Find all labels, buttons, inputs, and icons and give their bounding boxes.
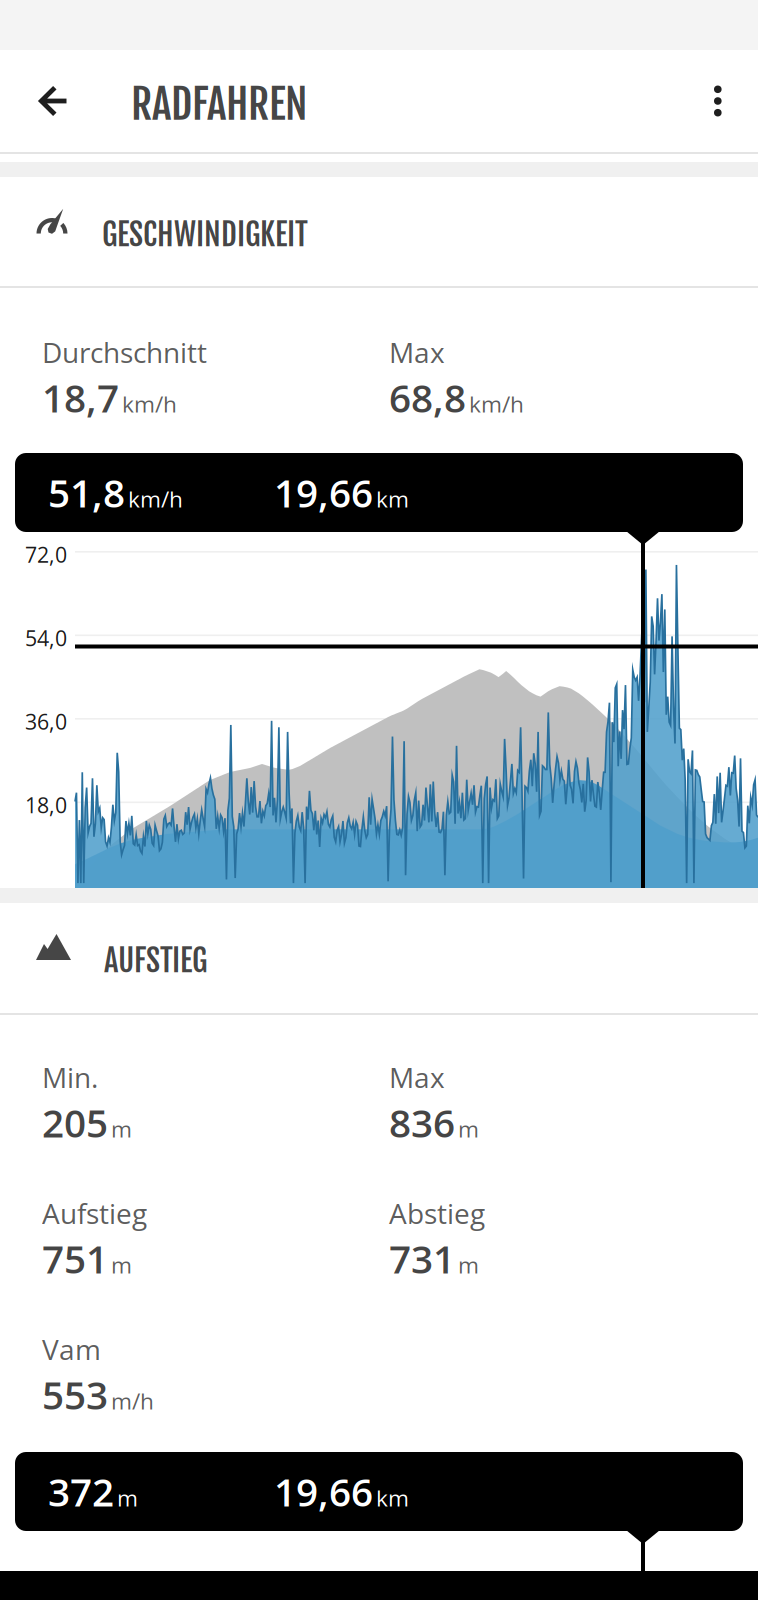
staticText: m xyxy=(458,1113,479,1144)
staticText: m xyxy=(111,1249,132,1280)
staticText: Max xyxy=(389,1058,445,1096)
button[interactable]: More options xyxy=(693,50,743,152)
staticText: GESCHWINDIGKEIT xyxy=(102,215,308,254)
staticText: 751 xyxy=(42,1232,108,1285)
staticText: 553 xyxy=(42,1368,108,1421)
staticText: km/h xyxy=(469,388,524,419)
staticText: AUFSTIEG xyxy=(104,941,207,980)
staticText: Vam xyxy=(42,1330,101,1368)
staticText: 836 xyxy=(389,1096,455,1149)
staticText: 372 xyxy=(48,1465,114,1518)
staticText: 72,0 xyxy=(25,540,67,569)
staticText: km xyxy=(376,1482,409,1513)
staticText: Max xyxy=(389,333,445,371)
staticText: 51,8 xyxy=(48,466,125,519)
staticText: Min. xyxy=(42,1058,98,1096)
staticText: 19,66 xyxy=(274,1465,373,1518)
staticText: m/h xyxy=(111,1385,154,1416)
staticText: m xyxy=(458,1249,479,1280)
staticText: Aufstieg xyxy=(42,1194,147,1232)
staticText: km/h xyxy=(122,388,177,419)
staticText: m xyxy=(111,1113,132,1144)
staticText: m xyxy=(117,1482,138,1513)
staticText: km/h xyxy=(128,483,183,514)
staticText: 36,0 xyxy=(25,707,67,736)
staticText: 19,66 xyxy=(274,466,373,519)
staticText: 68,8 xyxy=(389,371,466,424)
button[interactable]: Back xyxy=(22,50,82,152)
staticText: 731 xyxy=(389,1232,455,1285)
staticText: Durchschnitt xyxy=(42,333,207,371)
staticText: 205 xyxy=(42,1096,108,1149)
staticText: RADFAHREN xyxy=(131,78,307,130)
staticText: Abstieg xyxy=(389,1194,485,1232)
staticText: km xyxy=(376,483,409,514)
staticText: 18,7 xyxy=(42,371,119,424)
staticText: 18,0 xyxy=(25,790,67,820)
staticText: 54,0 xyxy=(25,623,67,653)
